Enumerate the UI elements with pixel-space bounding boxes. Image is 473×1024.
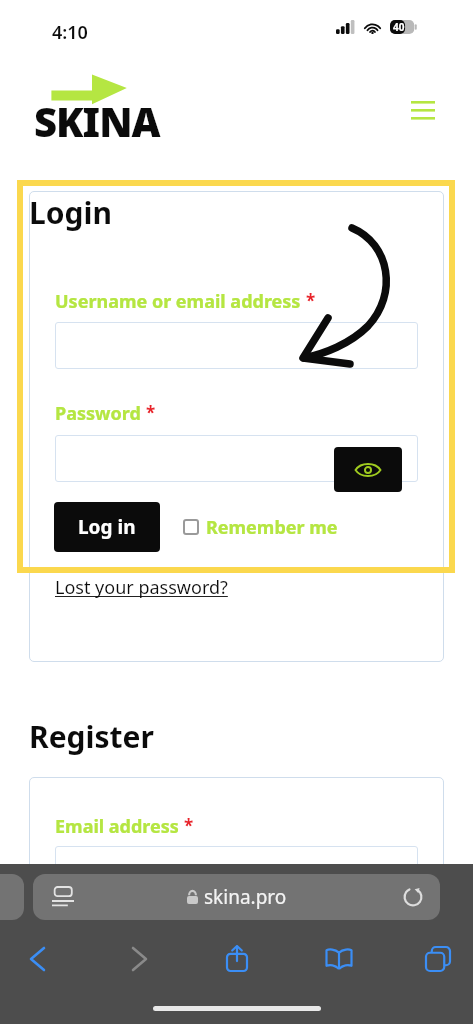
button[interactable]: Reload: [400, 884, 426, 910]
button[interactable]: Back: [22, 942, 52, 976]
button[interactable]: Show password: [334, 447, 402, 492]
button[interactable]: Forward: [124, 942, 154, 976]
button[interactable]: Lost your password?: [55, 575, 228, 600]
staticText: Remember me: [206, 515, 338, 540]
staticText: *: [146, 401, 156, 424]
button[interactable]: Tabs: [422, 942, 454, 976]
staticText: *: [184, 814, 194, 837]
button[interactable]: [55, 322, 418, 369]
staticText: 40: [393, 20, 405, 34]
staticText: Username or email address: [55, 289, 301, 314]
staticText: SKINA: [34, 94, 160, 148]
staticText: 4:10: [52, 20, 88, 45]
button[interactable]: Menu: [400, 88, 446, 132]
button[interactable]: Remember me: [183, 512, 338, 542]
button[interactable]: Bookmarks: [322, 942, 356, 976]
staticText: Password: [55, 401, 141, 426]
staticText: Lost your password?: [55, 575, 228, 600]
button[interactable]: Log in: [54, 502, 160, 552]
button[interactable]: [55, 435, 418, 482]
staticText: Login: [29, 192, 112, 233]
staticText: *: [306, 289, 316, 312]
staticText: Register: [29, 716, 154, 757]
staticText: skina.pro: [204, 884, 287, 910]
button[interactable]: Page settings: [33, 874, 440, 920]
button[interactable]: Share: [221, 940, 253, 976]
staticText: Email address: [55, 814, 179, 839]
button[interactable]: Page settings: [50, 885, 76, 909]
staticText: Log in: [78, 514, 136, 540]
